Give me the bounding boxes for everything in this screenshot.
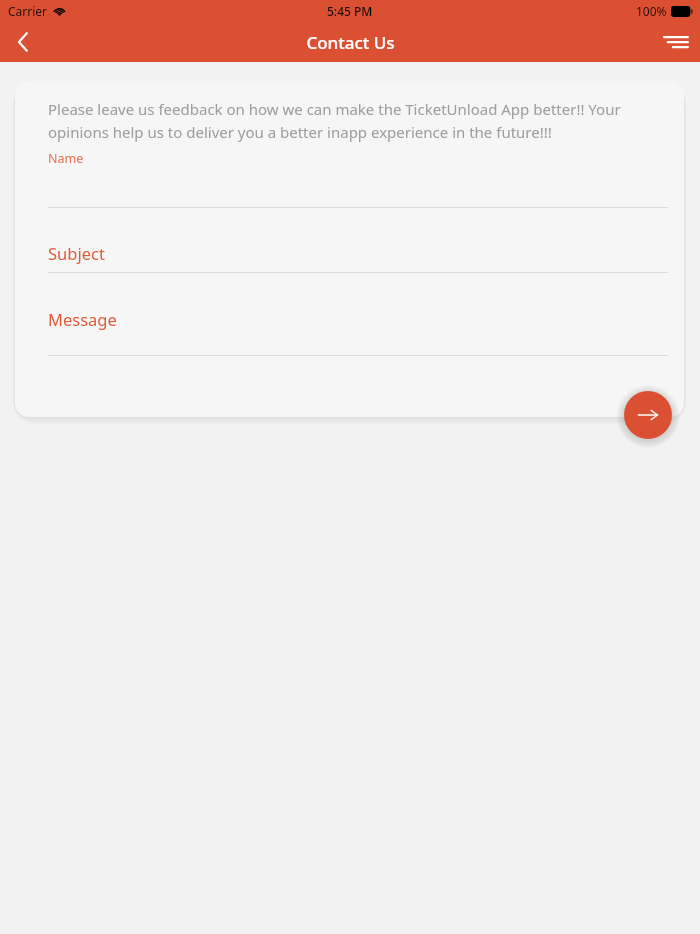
button[interactable]: Menu bbox=[652, 22, 700, 62]
staticText: Contact Us bbox=[306, 31, 395, 54]
staticText: 100% bbox=[636, 3, 667, 19]
button[interactable]: Submit bbox=[624, 391, 672, 439]
staticText: Message bbox=[48, 308, 117, 330]
staticText: Subject bbox=[48, 242, 105, 264]
staticText: 5:45 PM bbox=[327, 3, 373, 19]
staticText: Carrier bbox=[8, 3, 48, 19]
staticText: Name bbox=[48, 150, 84, 167]
staticText: Please leave us feedback on how we can m… bbox=[48, 99, 628, 142]
button[interactable]: Back bbox=[0, 22, 46, 62]
